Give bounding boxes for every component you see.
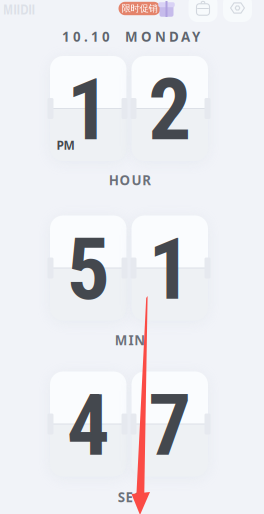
staticText: 10.10 MONDAY xyxy=(62,28,200,45)
button[interactable]: Shop xyxy=(188,0,217,22)
button[interactable]: Settings xyxy=(223,0,252,22)
staticText: MIN xyxy=(115,331,145,349)
staticText: 4 xyxy=(67,375,110,475)
staticText: 5 xyxy=(67,219,110,319)
button[interactable]: 限时促销 xyxy=(118,2,160,15)
staticText: PM xyxy=(56,137,74,153)
staticText: MIIDII xyxy=(3,0,35,19)
staticText: HOUR xyxy=(109,171,151,189)
staticText: 2 xyxy=(148,60,191,160)
staticText: 限时促销 xyxy=(121,3,157,14)
staticText: SEC xyxy=(118,488,142,506)
staticText: 1 xyxy=(148,219,191,319)
staticText: 7 xyxy=(148,375,191,475)
staticText: 1 xyxy=(67,60,110,160)
